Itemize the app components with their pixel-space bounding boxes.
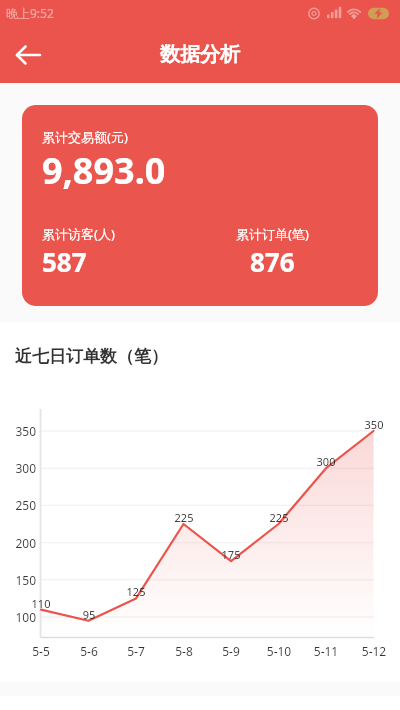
- staticText: 350: [354, 417, 394, 432]
- staticText: 100: [0, 609, 36, 625]
- staticText: 5-5: [21, 643, 61, 659]
- staticText: 175: [211, 547, 251, 562]
- staticText: 250: [0, 497, 36, 513]
- staticText: 5-12: [354, 643, 394, 659]
- staticText: 5-6: [69, 643, 109, 659]
- staticText: 5-11: [306, 643, 346, 659]
- staticText: 125: [116, 584, 156, 599]
- staticText: 累计交易额(元): [42, 128, 128, 146]
- button[interactable]: 累计交易额(元): [22, 105, 378, 306]
- staticText: 数据分析: [160, 42, 240, 67]
- staticText: 876: [250, 244, 295, 279]
- staticText: 累计访客(人): [42, 225, 115, 243]
- staticText: 225: [164, 510, 204, 525]
- staticText: 300: [306, 454, 346, 469]
- staticText: 300: [0, 460, 36, 476]
- staticText: 110: [21, 596, 61, 611]
- button[interactable]: [6, 33, 50, 77]
- staticText: 5-7: [116, 643, 156, 659]
- staticText: 5-9: [211, 643, 251, 659]
- staticText: 150: [0, 572, 36, 588]
- staticText: 9,893.0: [42, 146, 166, 195]
- staticText: 5-8: [164, 643, 204, 659]
- staticText: 200: [0, 535, 36, 551]
- staticText: 95: [69, 607, 109, 622]
- staticText: 5-10: [259, 643, 299, 659]
- staticText: 225: [259, 510, 299, 525]
- staticText: 350: [0, 423, 36, 439]
- staticText: 晚上9:52: [6, 5, 54, 21]
- staticText: 587: [42, 244, 87, 279]
- staticText: 累计订单(笔): [236, 225, 309, 243]
- staticText: 近七日订单数（笔）: [15, 346, 168, 367]
